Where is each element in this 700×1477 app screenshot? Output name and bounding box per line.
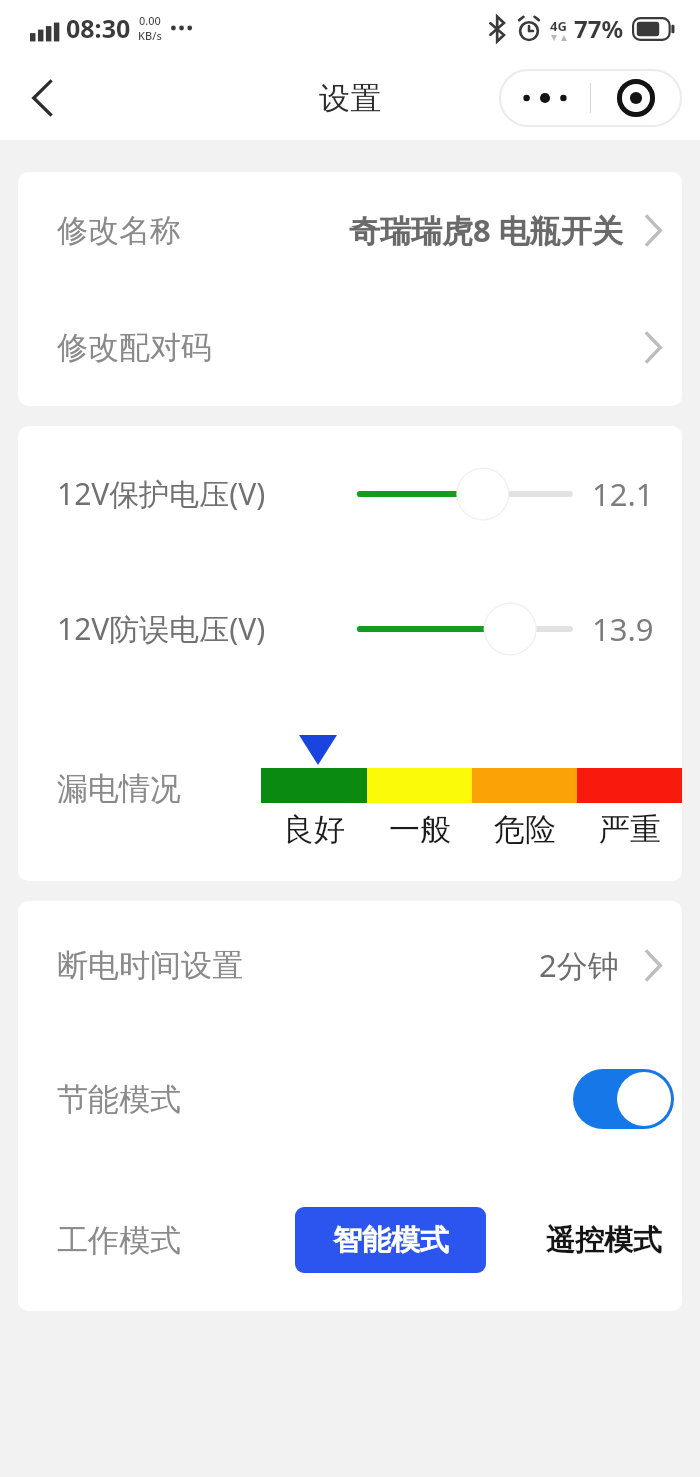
staticText: 设置 xyxy=(319,79,381,118)
staticText: 奇瑞瑞虎8 电瓶开关 xyxy=(349,209,623,251)
button[interactable]: 遥控模式 xyxy=(546,1207,662,1273)
staticText: 工作模式 xyxy=(57,1221,181,1260)
staticText: 断电时间设置 xyxy=(57,946,243,985)
staticText: 严重 xyxy=(599,810,661,849)
button[interactable]: More options xyxy=(500,70,590,126)
button[interactable]: Close xyxy=(591,70,681,126)
staticText: 4G xyxy=(550,17,567,35)
staticText: 漏电情况 xyxy=(57,769,181,808)
staticText: 08:30 xyxy=(66,11,131,45)
button[interactable]: 智能模式 xyxy=(295,1207,486,1273)
staticText: 77% xyxy=(574,12,624,45)
staticText: 危险 xyxy=(494,810,556,849)
staticText: 2分钟 xyxy=(539,944,619,986)
staticText: 一般 xyxy=(389,810,451,849)
staticText: KB/s xyxy=(138,28,162,43)
staticText: 修改名称 xyxy=(57,211,181,250)
staticText: 12.1 xyxy=(592,473,654,515)
staticText: 遥控模式 xyxy=(546,1222,662,1259)
staticText: 13.9 xyxy=(592,608,654,650)
button[interactable]: 修改配对码 xyxy=(18,288,682,406)
staticText: 0.00 xyxy=(139,13,161,28)
staticText: 修改配对码 xyxy=(57,328,212,367)
staticText: 12V防误电压(V) xyxy=(57,608,266,649)
button[interactable]: Back xyxy=(16,72,68,124)
staticText: 12V保护电压(V) xyxy=(57,473,266,514)
button[interactable]: 修改名称 xyxy=(18,172,682,288)
staticText: 良好 xyxy=(283,810,345,849)
button[interactable] xyxy=(358,463,572,525)
button[interactable]: 断电时间设置 xyxy=(18,901,682,1029)
staticText: 智能模式 xyxy=(333,1222,449,1259)
button[interactable]: Power saving mode toggle xyxy=(573,1069,674,1129)
button[interactable] xyxy=(358,598,572,660)
staticText: 节能模式 xyxy=(57,1080,181,1119)
